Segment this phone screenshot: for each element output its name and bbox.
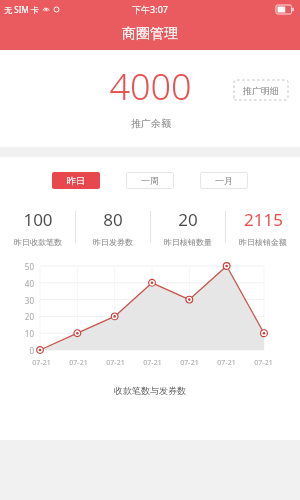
staticText: 昨日核销金额: [239, 237, 287, 247]
button[interactable]: 一周: [126, 172, 174, 189]
staticText: 20: [178, 208, 198, 231]
staticText: 10: [2, 328, 34, 339]
staticText: 07-21: [143, 358, 162, 368]
staticText: 无 SIM 卡: [4, 4, 39, 15]
staticText: 40: [2, 278, 34, 289]
staticText: 07-21: [180, 358, 199, 368]
staticText: 推广明细: [243, 85, 279, 96]
staticText: 昨日收款笔数: [14, 237, 62, 247]
staticText: 20: [2, 311, 34, 322]
staticText: 推广余额: [131, 117, 171, 130]
staticText: 100: [23, 208, 53, 231]
staticText: 30: [2, 295, 34, 306]
staticText: 07-21: [254, 358, 273, 368]
staticText: 昨日核销数量: [164, 237, 212, 247]
button[interactable]: 推广明细: [234, 80, 288, 100]
staticText: 商圈管理: [122, 25, 178, 43]
button[interactable]: 80: [76, 204, 150, 250]
staticText: 50: [2, 261, 34, 272]
staticText: 07-21: [69, 358, 88, 368]
staticText: 一月: [215, 175, 233, 186]
staticText: 下午3:07: [132, 3, 168, 15]
staticText: 07-21: [106, 358, 125, 368]
button[interactable]: 一月: [200, 172, 248, 189]
staticText: 4000: [109, 62, 192, 111]
staticText: 07-21: [32, 358, 51, 368]
staticText: 0: [2, 345, 34, 356]
button[interactable]: 20: [151, 204, 225, 250]
staticText: 昨日: [67, 175, 85, 186]
staticText: 收款笔数与发券数: [114, 385, 186, 396]
button[interactable]: 100: [0, 204, 75, 250]
staticText: 07-21: [217, 358, 236, 368]
staticText: 80: [103, 208, 123, 231]
staticText: 一周: [141, 175, 159, 186]
staticText: 昨日发券数: [93, 237, 133, 247]
button[interactable]: 昨日: [52, 172, 100, 189]
button[interactable]: 2115: [226, 204, 300, 250]
staticText: 2115: [244, 208, 283, 231]
